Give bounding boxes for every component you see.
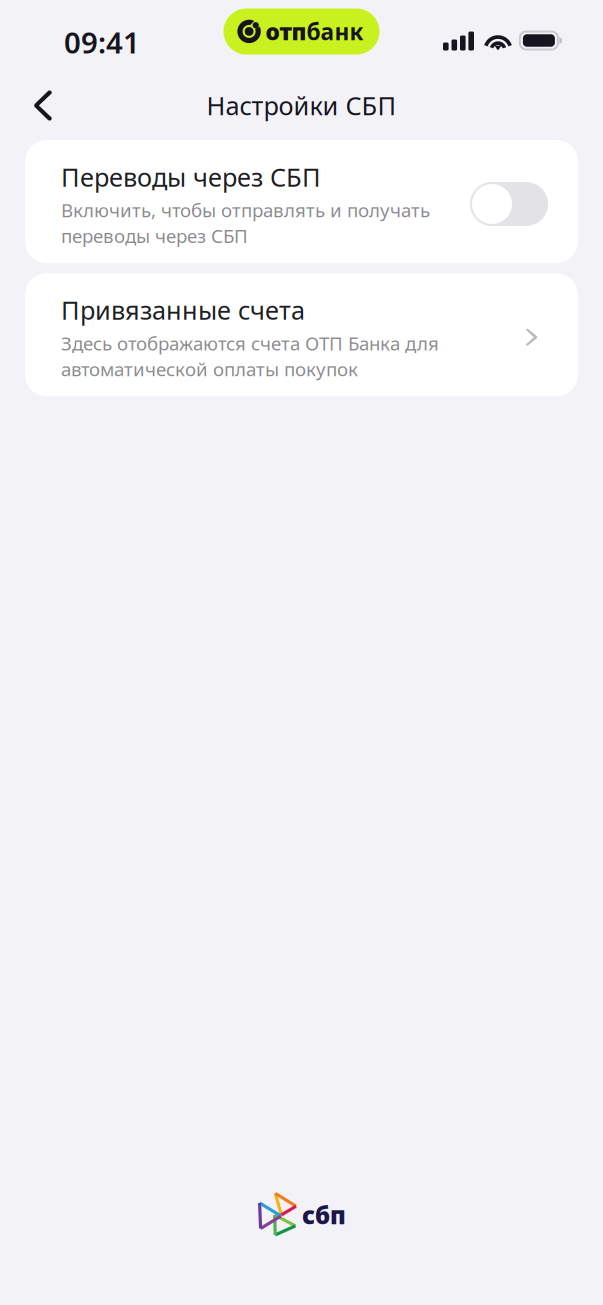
staticText: Включить, чтобы отправлять и получать пе… <box>61 198 430 248</box>
staticText: Здесь отображаются счета ОТП Банка для а… <box>61 331 439 381</box>
staticText: Переводы через СБП <box>61 160 321 194</box>
staticText: Настройки СБП <box>206 89 396 122</box>
button[interactable]: Назад <box>0 78 74 133</box>
button[interactable]: Привязанные счета <box>25 273 578 396</box>
staticText: сбп <box>302 1199 346 1231</box>
staticText: 09:41 <box>64 22 140 61</box>
staticText: банк <box>306 16 363 47</box>
staticText: Привязанные счета <box>61 293 305 327</box>
staticText: отп <box>265 16 306 47</box>
button[interactable]: Переводы через СБП <box>25 140 578 263</box>
